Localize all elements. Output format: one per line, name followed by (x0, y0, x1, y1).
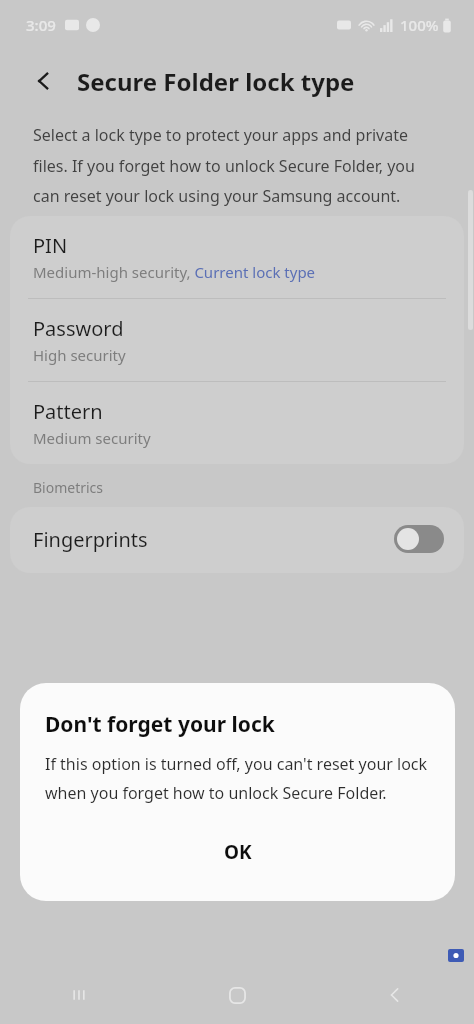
staticText: Biometrics (33, 478, 104, 497)
staticText: Secure Folder lock type (77, 65, 355, 98)
button[interactable]: Back (24, 61, 64, 101)
staticText: Password (33, 315, 124, 342)
staticText: Medium security (33, 428, 151, 448)
staticText: If this option is turned off, you can't … (45, 753, 430, 803)
staticText: PIN (33, 232, 68, 259)
staticText: Fingerprints (33, 526, 394, 553)
staticText: Medium-high security, Current lock type (33, 262, 316, 282)
button[interactable]: OK (45, 829, 430, 875)
button[interactable]: Fingerprints toggle (394, 525, 444, 553)
button[interactable]: Password (10, 299, 464, 381)
staticText: Don't forget your lock (45, 710, 275, 739)
staticText: Select a lock type to protect your apps … (33, 124, 442, 206)
staticText: Pattern (33, 398, 103, 425)
button[interactable]: PIN (10, 216, 464, 298)
staticText: High security (33, 345, 126, 365)
button[interactable]: Fingerprints (10, 507, 464, 573)
button[interactable]: Pattern (10, 382, 464, 464)
staticText: 100% (400, 15, 439, 35)
staticText: 3:09 (26, 15, 56, 35)
staticText: OK (224, 839, 252, 865)
